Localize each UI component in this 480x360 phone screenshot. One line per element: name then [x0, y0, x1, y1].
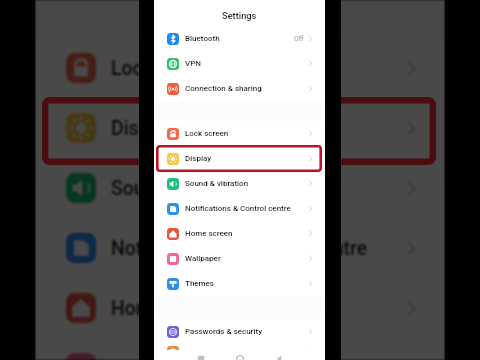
staticText: Home screen	[111, 297, 227, 320]
staticText: Display	[185, 154, 212, 163]
button[interactable]: Notifications & Control centre	[35, 218, 445, 278]
staticText: Display	[111, 117, 175, 140]
staticText: Lock screen	[185, 129, 229, 138]
button[interactable]: recents	[196, 354, 206, 360]
staticText: Notifications & Control centre	[185, 204, 291, 213]
staticText: Home screen	[185, 229, 233, 238]
button[interactable]: Display	[154, 146, 325, 171]
staticText: Notifications & Control centre	[111, 237, 368, 260]
button[interactable]: Wallpaper	[35, 338, 445, 360]
staticText: Sound & vibration	[185, 179, 249, 188]
button[interactable]: Wallpaper	[154, 246, 325, 271]
button[interactable]: back	[274, 354, 284, 360]
staticText: Wallpaper	[185, 254, 221, 263]
staticText: VPN	[185, 59, 201, 68]
staticText: Off	[294, 35, 304, 43]
button[interactable]: Passwords & security	[154, 319, 325, 344]
staticText: Connection & sharing	[185, 84, 262, 93]
staticText: Themes	[185, 279, 214, 288]
button[interactable]: Home screen	[35, 278, 445, 338]
button[interactable]: Sound & vibration	[35, 158, 445, 218]
button[interactable]: Bluetooth	[154, 26, 325, 51]
button[interactable]: Home screen	[154, 221, 325, 246]
button[interactable]: Lock screen	[35, 38, 445, 98]
staticText: Settings	[222, 10, 257, 21]
button[interactable]: VPN	[154, 51, 325, 76]
staticText: Sound & vibration	[111, 177, 264, 200]
button[interactable]: Privacy protection	[154, 344, 325, 360]
button[interactable]: Sound & vibration	[154, 171, 325, 196]
button[interactable]: Display	[35, 98, 445, 158]
staticText: Lock screen	[111, 57, 216, 80]
button[interactable]: Connection & sharing	[154, 76, 325, 101]
button[interactable]: Lock screen	[154, 121, 325, 146]
staticText: Wallpaper	[111, 357, 198, 360]
staticText: Bluetooth	[185, 34, 220, 43]
button[interactable]: Themes	[154, 271, 325, 296]
button[interactable]: home	[235, 354, 245, 360]
staticText: Privacy protection	[185, 348, 250, 357]
staticText: Passwords & security	[185, 327, 263, 336]
button[interactable]: Notifications & Control centre	[154, 196, 325, 221]
